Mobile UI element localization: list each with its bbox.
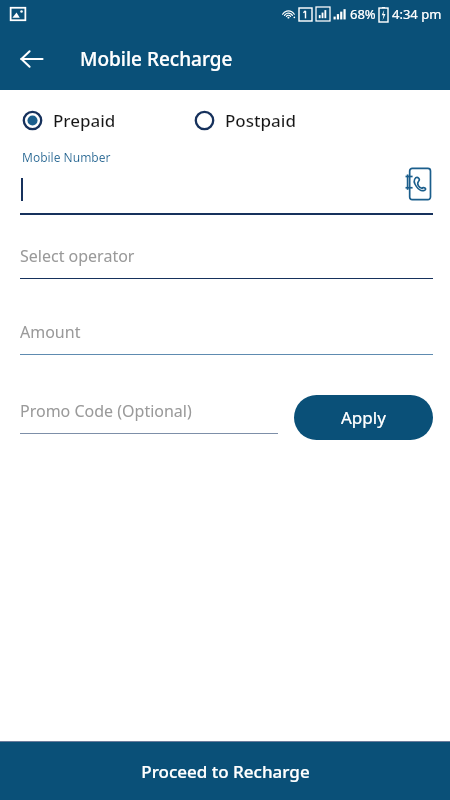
- staticText: Promo Code (Optional): [20, 400, 192, 422]
- button[interactable]: Proceed to Recharge: [0, 742, 450, 800]
- button[interactable]: Amount: [0, 321, 450, 355]
- button[interactable]: Prepaid: [22, 109, 116, 132]
- button[interactable]: Apply: [294, 395, 433, 440]
- button[interactable]: Pick contact: [403, 166, 433, 202]
- staticText: 68%: [350, 5, 376, 23]
- button[interactable]: Promo Code (Optional): [20, 400, 278, 434]
- staticText: 4:34 pm: [392, 5, 442, 23]
- button[interactable]: Select operator: [0, 245, 450, 279]
- button[interactable]: Back: [8, 35, 56, 83]
- button[interactable]: Postpaid: [194, 109, 296, 132]
- staticText: Postpaid: [225, 109, 296, 132]
- staticText: Amount: [20, 321, 81, 343]
- staticText: Select operator: [20, 245, 135, 267]
- staticText: Mobile Recharge: [80, 46, 233, 72]
- staticText: Proceed to Recharge: [141, 760, 310, 783]
- staticText: Apply: [341, 406, 386, 429]
- staticText: Mobile Number: [22, 149, 111, 165]
- staticText: Prepaid: [53, 109, 116, 132]
